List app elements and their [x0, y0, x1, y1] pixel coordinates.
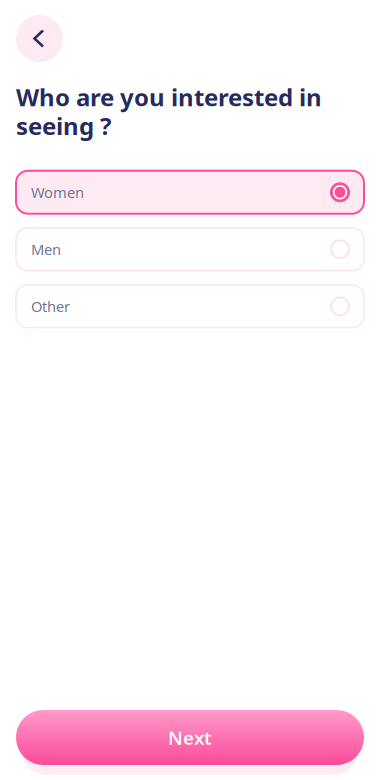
button[interactable]: Men: [16, 228, 364, 271]
staticText: Who are you interested in: [16, 81, 322, 113]
button[interactable]: Other: [16, 285, 364, 328]
staticText: Other: [31, 296, 70, 316]
button[interactable]: Women: [16, 171, 364, 214]
button[interactable]: Back: [16, 15, 63, 62]
staticText: seeing ?: [16, 110, 111, 142]
staticText: Next: [168, 725, 212, 750]
button[interactable]: Next: [16, 710, 364, 775]
staticText: Men: [31, 239, 61, 259]
staticText: Women: [31, 182, 84, 202]
